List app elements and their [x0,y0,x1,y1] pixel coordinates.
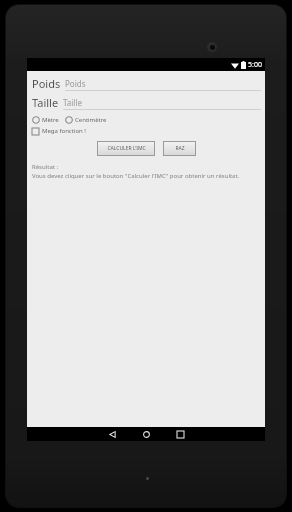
button[interactable]: Poids [32,76,261,91]
button[interactable]: Centimètre [65,116,107,124]
staticText: CALCULER L'IMC [107,145,146,152]
button[interactable]: Mètre [32,116,59,124]
button[interactable]: Recent apps [168,427,192,441]
staticText: Centimètre [75,116,107,124]
button[interactable]: Mega fonction ! [32,127,86,135]
button[interactable]: Back [100,427,124,441]
staticText: Vous devez cliquer sur le bouton "Calcul… [32,172,240,180]
button[interactable]: CALCULER L'IMC [98,142,154,155]
button[interactable]: RAZ [164,142,195,155]
staticText: Taille [32,95,59,110]
staticText: Taille [63,97,82,108]
staticText: 5:00 [248,60,262,70]
staticText: Mètre [42,116,59,124]
staticText: Résultat : [32,163,59,171]
staticText: Mega fonction ! [42,127,86,135]
button[interactable]: Home [134,427,158,441]
staticText: Poids [32,76,61,91]
staticText: RAZ [175,145,185,152]
staticText: Poids [65,78,86,89]
button[interactable]: Taille [32,95,261,110]
